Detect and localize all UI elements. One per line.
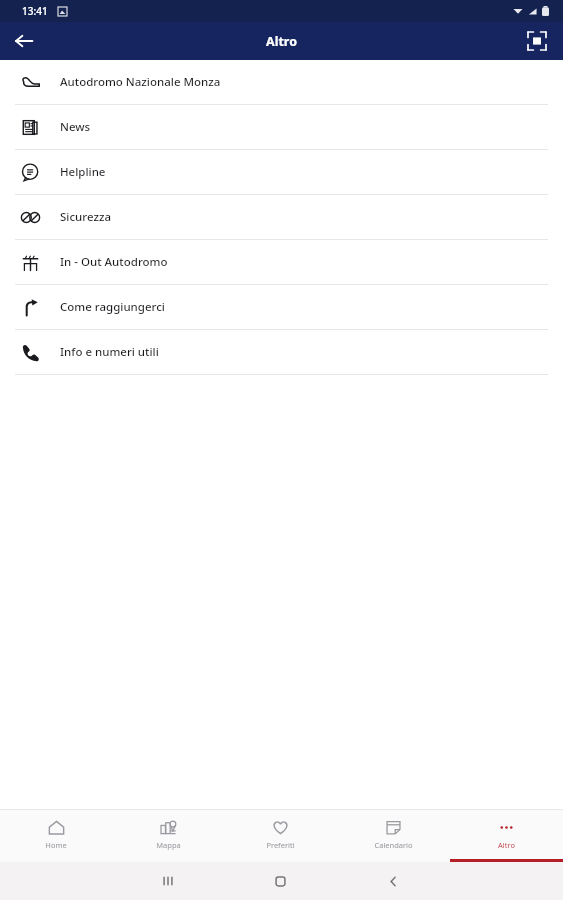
- button[interactable]: Autodromo Nazionale Monza: [0, 60, 563, 104]
- button[interactable]: In - Out Autodromo: [0, 240, 563, 284]
- staticText: News: [60, 119, 91, 135]
- button[interactable]: News: [0, 105, 563, 149]
- button[interactable]: Scan QR code: [517, 22, 557, 60]
- button[interactable]: Preferiti: [224, 810, 337, 862]
- button[interactable]: Sicurezza: [0, 195, 563, 239]
- button[interactable]: Back: [4, 22, 44, 60]
- staticText: Altro: [498, 840, 515, 850]
- button[interactable]: Helpline: [0, 150, 563, 194]
- staticText: Autodromo Nazionale Monza: [60, 74, 221, 90]
- staticText: Helpline: [60, 164, 106, 180]
- staticText: Preferiti: [266, 840, 295, 850]
- staticText: Altro: [266, 33, 297, 50]
- button[interactable]: Home: [0, 810, 112, 862]
- staticText: In - Out Autodromo: [60, 254, 168, 270]
- staticText: Info e numeri utili: [60, 344, 159, 360]
- staticText: Calendario: [374, 840, 413, 850]
- staticText: 13:41: [22, 4, 48, 18]
- button[interactable]: Mappa: [112, 810, 224, 862]
- staticText: Mappa: [156, 840, 181, 850]
- button[interactable]: Altro: [450, 810, 563, 862]
- button[interactable]: Calendario: [337, 810, 450, 862]
- staticText: Home: [45, 840, 67, 850]
- staticText: Sicurezza: [60, 209, 111, 225]
- button[interactable]: Come raggiungerci: [0, 285, 563, 329]
- button[interactable]: Info e numeri utili: [0, 330, 563, 374]
- staticText: Come raggiungerci: [60, 299, 165, 315]
